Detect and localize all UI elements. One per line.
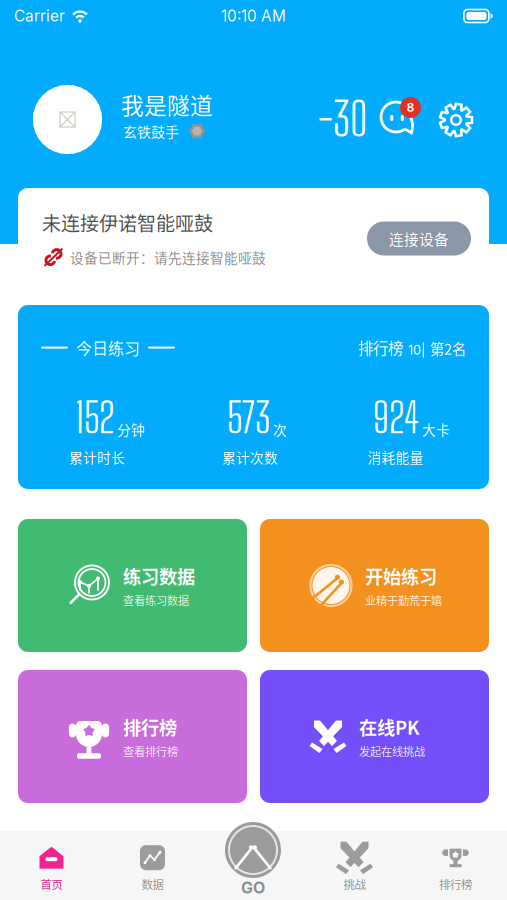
staticText: 累计次数	[222, 447, 278, 467]
staticText: 累计时长	[69, 447, 125, 467]
staticText: 发起在线挑战	[359, 743, 425, 759]
staticText: 分钟	[117, 419, 145, 439]
staticText: GO	[241, 878, 265, 897]
staticText: 152	[75, 393, 114, 442]
button[interactable]: Start practice	[213, 822, 293, 897]
staticText: 未连接伊诺智能哑鼓	[42, 209, 213, 236]
staticText: 排行榜	[123, 714, 177, 740]
staticText: 查看练习数据	[123, 592, 189, 608]
staticText: 玄铁鼓手	[123, 121, 179, 141]
staticText: 连接设备	[389, 228, 449, 249]
staticText: -30	[318, 92, 367, 146]
staticText: 设备已断开：请先连接智能哑鼓	[70, 247, 266, 267]
button[interactable]: 在线PK	[260, 670, 489, 803]
staticText: 查看排行榜	[123, 743, 178, 759]
staticText: Carrier	[14, 7, 65, 25]
staticText: 大卡	[422, 419, 450, 439]
staticText: 10|	[408, 342, 425, 358]
staticText: 消耗能量	[367, 447, 423, 467]
button[interactable]: 练习数据	[18, 519, 247, 652]
button[interactable]: 排行榜	[18, 670, 247, 803]
button[interactable]: 挑战	[304, 839, 405, 897]
staticText: 8	[406, 100, 414, 115]
staticText: 排行榜	[439, 876, 472, 892]
staticText: 首页	[40, 876, 62, 892]
image	[59, 111, 75, 127]
button[interactable]: 排行榜	[405, 839, 506, 897]
staticText: 今日练习	[76, 336, 140, 359]
button[interactable]: 连接设备	[367, 221, 471, 255]
staticText: 924	[373, 393, 419, 442]
staticText: 开始练习	[365, 563, 437, 589]
staticText: 次	[273, 419, 287, 439]
staticText: 在线PK	[359, 714, 420, 740]
button[interactable]: 开始练习	[260, 519, 489, 652]
staticText: 第2名	[430, 338, 466, 359]
staticText: 我是隧道	[121, 88, 213, 121]
button[interactable]: Profile photo	[33, 85, 102, 154]
button[interactable]: 数据	[102, 839, 203, 897]
staticText: 挑战	[343, 876, 365, 892]
staticText: 练习数据	[123, 563, 195, 589]
button[interactable]: 首页	[1, 839, 102, 897]
staticText: 10:10 AM	[221, 7, 286, 25]
staticText: 573	[227, 393, 270, 442]
staticText: 业精于勤荒于嬉	[365, 592, 442, 608]
staticText: 排行榜	[358, 336, 403, 359]
button[interactable]: Settings	[438, 102, 474, 138]
staticText: 数据	[141, 876, 163, 892]
button[interactable]: Messages	[376, 98, 420, 138]
